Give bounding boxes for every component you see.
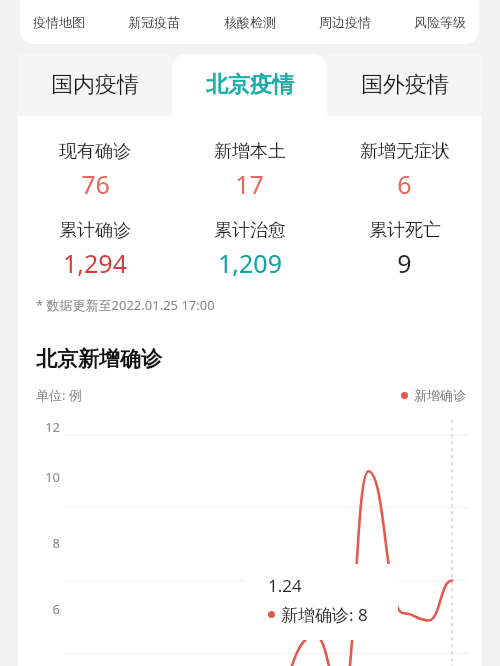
button[interactable]: 新增无症状 (327, 138, 482, 203)
staticText: 1,209 (218, 246, 282, 280)
button[interactable]: 新增确诊 (401, 387, 466, 403)
button[interactable]: 北京疫情 (172, 54, 327, 116)
staticText: 17 (235, 167, 264, 201)
staticText: 现有确诊 (59, 140, 131, 163)
staticText: 国外疫情 (361, 71, 449, 99)
staticText: 新增确诊 (414, 387, 466, 403)
staticText: 新增本土 (214, 140, 286, 163)
staticText: 累计确诊 (59, 219, 131, 242)
staticText: 北京疫情 (206, 71, 294, 99)
staticText: 新增无症状 (360, 140, 450, 163)
button[interactable]: Data tooltip (246, 564, 398, 640)
button[interactable]: 新冠疫苗 (125, 8, 183, 36)
staticText: 12 (18, 418, 60, 436)
staticText: 9 (397, 246, 412, 280)
staticText: 国内疫情 (51, 71, 139, 99)
button[interactable]: 周边疫情 (316, 8, 374, 36)
staticText: 8 (18, 534, 60, 552)
staticText: 新冠疫苗 (128, 14, 180, 30)
staticText: 累计死亡 (369, 219, 441, 242)
staticText: 北京新增确诊 (36, 346, 162, 372)
staticText: 1.24 (268, 574, 302, 597)
staticText: 周边疫情 (319, 14, 371, 30)
staticText: 疫情地图 (33, 14, 85, 30)
staticText: 单位: 例 (36, 386, 82, 404)
button[interactable]: 累计治愈 (172, 217, 327, 282)
button[interactable]: 风险等级 (411, 8, 469, 36)
button[interactable]: 国外疫情 (327, 54, 482, 116)
staticText: 76 (81, 167, 110, 201)
staticText: 新增确诊: 8 (281, 603, 368, 626)
staticText: 6 (18, 600, 60, 618)
button[interactable]: 新增本土 (172, 138, 327, 203)
staticText: 6 (397, 167, 412, 201)
staticText: 10 (18, 468, 60, 486)
staticText: 核酸检测 (224, 14, 276, 30)
button[interactable]: 疫情地图 (30, 8, 88, 36)
button[interactable]: 累计确诊 (18, 217, 172, 282)
staticText: * 数据更新至2022.01.25 17:00 (36, 296, 215, 314)
staticText: 1,294 (63, 246, 127, 280)
button[interactable]: 国内疫情 (18, 54, 172, 116)
button[interactable]: 核酸检测 (221, 8, 279, 36)
button[interactable]: 累计死亡 (327, 217, 482, 282)
staticText: 风险等级 (414, 14, 466, 30)
staticText: 累计治愈 (214, 219, 286, 242)
button[interactable]: 现有确诊 (18, 138, 172, 203)
